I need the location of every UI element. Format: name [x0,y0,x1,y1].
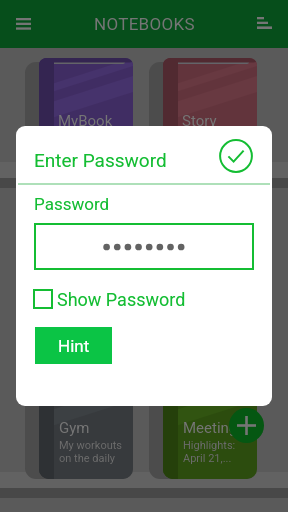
button[interactable]: Open navigation drawer [5,6,41,42]
staticText: NOTEBOOKS [94,14,195,34]
staticText: Password [34,194,110,214]
button[interactable]: Show Password [32,286,186,312]
staticText: MyBook [58,112,113,130]
staticText: Hint [58,336,90,356]
button[interactable]: Gym [59,419,129,465]
staticText: Story [182,112,217,130]
staticText: Enter Password [34,149,167,171]
button[interactable]: Confirm password [215,135,257,177]
button[interactable]: Hint [35,327,112,364]
button[interactable] [34,223,254,270]
button[interactable]: Story [182,112,252,130]
staticText: Gym [59,419,90,437]
button[interactable]: Meeting [183,419,253,465]
button[interactable]: Sort notebooks [246,5,282,41]
staticText: Meeting [183,419,238,437]
button[interactable]: MyBook [58,112,128,130]
staticText: My workouts on the daily [59,439,122,465]
button[interactable]: Add notebook [229,408,264,443]
staticText: Show Password [57,289,186,310]
staticText: Highlights: April 21,... [183,439,236,465]
